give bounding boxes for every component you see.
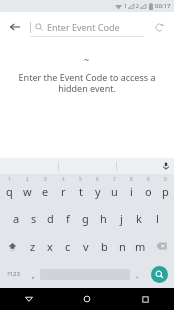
button[interactable]: Voice input: [158, 158, 174, 174]
button[interactable]: Back: [0, 288, 58, 310]
staticText: d: [47, 211, 54, 226]
staticText: g: [82, 211, 89, 226]
staticText: j: [120, 211, 123, 226]
staticText: z: [30, 239, 36, 254]
staticText: Enter Event Code: [47, 21, 120, 33]
staticText: 3: [44, 176, 47, 182]
staticText: w: [23, 184, 32, 199]
staticText: n: [119, 239, 126, 254]
staticText: 2: [26, 176, 29, 182]
staticText: e: [42, 184, 49, 199]
button[interactable]: 6: [89, 175, 106, 204]
button[interactable]: d: [42, 204, 59, 232]
button[interactable]: z: [24, 232, 41, 260]
button[interactable]: l: [148, 204, 166, 232]
staticText: 1: [8, 176, 11, 182]
button[interactable]: c: [59, 232, 77, 260]
staticText: 00:17: [155, 2, 171, 10]
staticText: h: [100, 211, 107, 226]
staticText: 1: [124, 3, 127, 10]
button[interactable]: Recents: [116, 288, 174, 310]
button[interactable]: 0: [157, 175, 174, 204]
staticText: 7: [113, 176, 116, 182]
staticText: a: [13, 211, 20, 226]
button[interactable]: j: [112, 204, 130, 232]
staticText: Enter the Event Code to access a hidden …: [8, 71, 166, 95]
staticText: 4: [62, 176, 65, 182]
button[interactable]: m: [131, 232, 149, 260]
staticText: y: [95, 184, 101, 199]
button[interactable]: g: [76, 204, 94, 232]
button[interactable]: Home: [58, 288, 116, 310]
button[interactable]: 9: [140, 175, 157, 204]
staticText: r: [61, 184, 66, 199]
button[interactable]: x: [41, 232, 59, 260]
staticText: 8: [130, 176, 133, 182]
staticText: ?123: [7, 270, 20, 278]
staticText: 9: [147, 176, 150, 182]
button[interactable]: 8: [123, 175, 140, 204]
staticText: o: [145, 184, 152, 199]
staticText: 6: [96, 176, 99, 182]
button[interactable]: a: [8, 204, 25, 232]
button[interactable]: Back: [0, 12, 30, 42]
staticText: 2: [136, 3, 139, 10]
staticText: s: [31, 211, 37, 226]
staticText: m: [135, 239, 146, 254]
button[interactable]: .: [130, 260, 144, 288]
button[interactable]: 3: [36, 175, 54, 204]
button[interactable]: Refresh: [144, 12, 174, 42]
staticText: ~: [84, 53, 90, 65]
staticText: q: [6, 184, 13, 199]
staticText: x: [47, 239, 53, 254]
staticText: b: [101, 239, 108, 254]
staticText: .: [136, 268, 139, 280]
staticText: c: [65, 239, 71, 254]
button[interactable]: 5: [72, 175, 89, 204]
button[interactable]: Backspace: [149, 232, 174, 260]
button[interactable]: 1: [0, 175, 18, 204]
staticText: 5: [79, 176, 82, 182]
button[interactable]: b: [95, 232, 113, 260]
button[interactable]: n: [113, 232, 131, 260]
staticText: k: [136, 211, 142, 226]
button[interactable]: ?123: [0, 260, 26, 288]
button[interactable]: f: [59, 204, 76, 232]
button[interactable]: 7: [106, 175, 123, 204]
button[interactable]: 2: [18, 175, 36, 204]
button[interactable]: 4: [54, 175, 72, 204]
staticText: t: [79, 184, 83, 199]
staticText: 0: [164, 176, 167, 182]
staticText: f: [66, 211, 70, 226]
staticText: l: [156, 211, 159, 226]
staticText: ,: [32, 268, 35, 280]
staticText: i: [130, 184, 133, 199]
button[interactable]: Enter Event Code: [30, 12, 144, 42]
button[interactable]: s: [25, 204, 42, 232]
button[interactable]: Search: [151, 266, 168, 283]
button[interactable]: Shift: [0, 232, 24, 260]
button[interactable]: k: [130, 204, 148, 232]
staticText: u: [111, 184, 118, 199]
button[interactable]: ,: [26, 260, 40, 288]
staticText: p: [162, 184, 169, 199]
button[interactable]: v: [77, 232, 95, 260]
staticText: v: [83, 239, 89, 254]
button[interactable]: h: [94, 204, 112, 232]
